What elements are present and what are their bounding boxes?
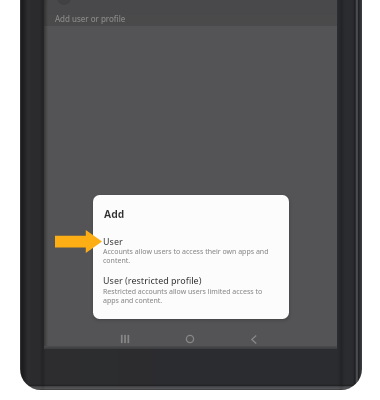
other: Pointer arrow <box>55 230 102 253</box>
button[interactable]: Recent apps <box>112 327 138 351</box>
staticText: Add user or profile <box>55 13 126 24</box>
staticText: User (restricted profile) <box>103 274 202 286</box>
button[interactable]: Home <box>177 327 203 351</box>
staticText: Add <box>104 207 125 221</box>
staticText: Accounts allow users to access their own… <box>103 247 271 265</box>
button[interactable]: User (restricted profile) <box>93 271 289 307</box>
staticText: User <box>103 235 123 247</box>
button[interactable]: User <box>93 231 289 267</box>
button[interactable]: Back <box>241 327 267 351</box>
staticText: Restricted accounts allow users limited … <box>103 287 271 305</box>
